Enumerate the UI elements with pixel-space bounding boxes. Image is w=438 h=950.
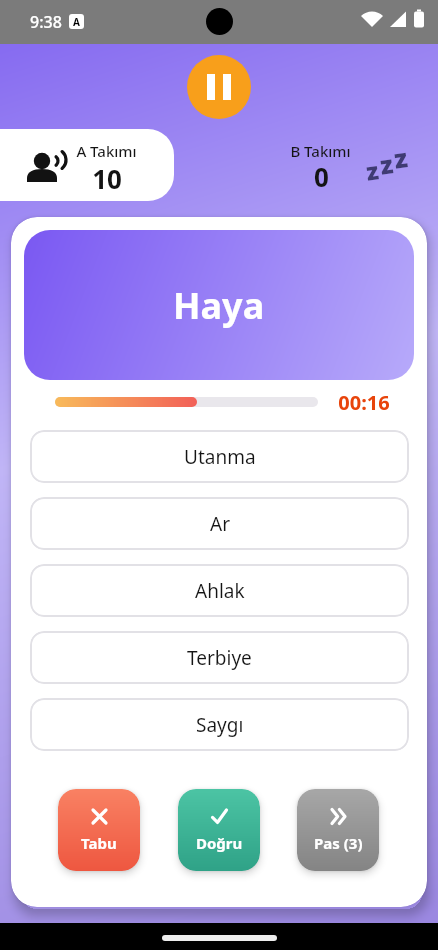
button[interactable]: Pas (3) (297, 789, 379, 871)
staticText: 9:38 (30, 11, 62, 33)
staticText: Saygı (196, 712, 244, 738)
button[interactable]: Terbiye (30, 631, 409, 684)
staticText: Terbiye (187, 645, 252, 671)
button[interactable] (187, 55, 251, 119)
staticText: B Takımı (290, 141, 351, 159)
staticText: z (378, 146, 395, 182)
staticText: z (392, 139, 410, 176)
staticText: Utanma (184, 444, 256, 470)
staticText: 00:16 (338, 389, 390, 413)
staticText: 10 (92, 161, 122, 191)
staticText: 0 (314, 159, 329, 191)
staticText: Haya (173, 281, 265, 330)
button[interactable]: Utanma (30, 430, 409, 483)
staticText: Ar (210, 511, 230, 537)
button[interactable]: Haya (24, 230, 414, 380)
staticText: Doğru (196, 833, 243, 853)
button[interactable]: Ar (30, 497, 409, 550)
staticText: Ahlak (195, 578, 245, 604)
staticText: Pas (3) (314, 833, 363, 853)
button[interactable]: A Takımı (0, 129, 174, 201)
staticText: A Takımı (76, 141, 137, 159)
staticText: A (73, 15, 80, 29)
staticText: z (364, 153, 381, 188)
button[interactable]: Tabu (58, 789, 140, 871)
staticText: Tabu (81, 833, 117, 853)
button[interactable]: Doğru (178, 789, 260, 871)
button[interactable]: Saygı (30, 698, 409, 751)
button[interactable]: Ahlak (30, 564, 409, 617)
